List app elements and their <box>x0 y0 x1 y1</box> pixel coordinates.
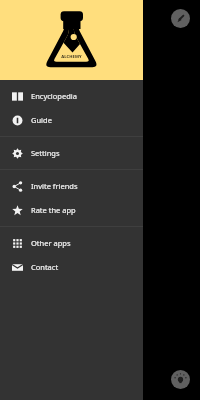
staticText: Rate the app <box>31 205 76 215</box>
staticText: ALCHEMY <box>61 54 82 60</box>
staticText: Encyclopedia <box>31 91 77 101</box>
staticText: Settings <box>31 148 60 158</box>
button[interactable]: Rate the app <box>0 198 143 222</box>
button[interactable]: Clear <box>171 9 190 28</box>
staticText: Contact <box>31 262 59 272</box>
button[interactable]: Settings <box>0 141 143 165</box>
button[interactable]: Hint <box>171 370 190 389</box>
staticText: Other apps <box>31 238 71 248</box>
staticText: Guide <box>31 115 52 125</box>
button[interactable]: Contact <box>0 255 143 279</box>
button[interactable]: Encyclopedia <box>0 84 143 108</box>
staticText: Invite friends <box>31 181 78 191</box>
button[interactable]: Guide <box>0 108 143 132</box>
button[interactable]: Other apps <box>0 231 143 255</box>
button[interactable]: Invite friends <box>0 174 143 198</box>
